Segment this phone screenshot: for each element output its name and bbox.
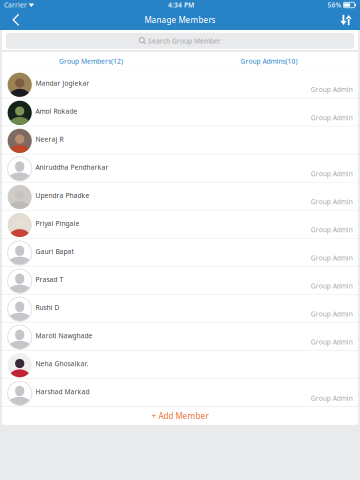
button[interactable]: Sort order [335,10,357,30]
button[interactable]: Search Group Member [2,30,358,50]
button[interactable]: Amol Rokade [2,98,358,126]
button[interactable]: Harshad Markad [2,379,358,407]
button[interactable]: Priyal Pingale [2,211,358,239]
staticText: Group Admin [311,309,353,318]
button[interactable]: Mandar Joglekar [2,70,358,98]
staticText: Prasad T [35,275,63,284]
staticText: 56% [328,1,342,9]
button[interactable]: Aniruddha Pendharkar [2,154,358,182]
staticText: Gauri Bapat [35,247,73,256]
staticText: Group Admin [311,281,353,290]
button[interactable]: Back [3,10,29,30]
staticText: Group Admin [311,85,353,94]
staticText: Search Group Member [148,36,221,45]
button[interactable]: Maroti Nawghade [2,323,358,351]
button[interactable]: Gauri Bapat [2,239,358,267]
staticText: Group Admin [311,113,353,122]
button[interactable]: + Add Member [2,407,358,425]
staticText: Group Members(12) [59,57,123,66]
staticText: Carrier [4,1,27,9]
staticText: Priyal Pingale [35,219,79,228]
button[interactable]: Neha Ghosalkar. [2,351,358,379]
staticText: Neeraj R [35,135,63,144]
button[interactable]: Prasad T [2,267,358,295]
button[interactable]: Rushi D [2,295,358,323]
staticText: 4:34 PM [168,1,194,9]
staticText: Group Admin [311,225,353,234]
staticText: Upendra Phadke [35,191,89,200]
button[interactable]: Group Admins(10) [180,52,358,70]
button[interactable]: Neeraj R [2,126,358,154]
staticText: Group Admins(10) [240,57,297,66]
staticText: Group Admin [311,394,353,402]
staticText: Maroti Nawghade [35,331,92,340]
staticText: Group Admin [311,337,353,346]
staticText: Neha Ghosalkar. [35,359,88,368]
staticText: Aniruddha Pendharkar [35,163,108,172]
staticText: Mandar Joglekar [35,79,89,88]
button[interactable]: Upendra Phadke [2,182,358,211]
staticText: Group Admin [311,169,353,178]
staticText: Amol Rokade [35,107,77,116]
staticText: + Add Member [151,411,208,421]
staticText: Harshad Markad [35,387,89,396]
staticText: Rushi D [35,303,59,312]
button[interactable]: Group Members(12) [2,52,180,70]
staticText: Group Admin [311,197,353,206]
staticText: Group Admin [311,253,353,262]
staticText: Manage Members [144,15,215,25]
